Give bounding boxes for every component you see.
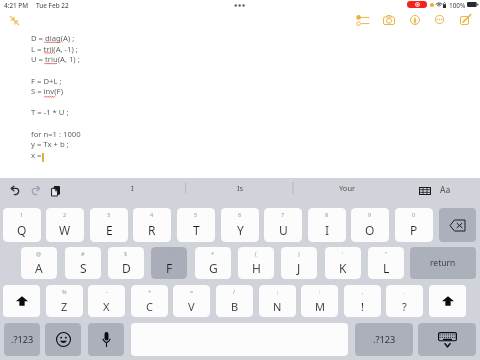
staticText: 7 [281, 211, 285, 219]
button[interactable]: Collapse [9, 15, 20, 26]
staticText: 9 [368, 211, 372, 219]
staticText: J [297, 260, 301, 276]
staticText: T = -1 * U ; [31, 107, 69, 117]
staticText: return [430, 257, 456, 269]
staticText: A [35, 260, 43, 276]
button[interactable]: , [344, 285, 381, 317]
button[interactable]: / [216, 285, 253, 317]
button[interactable]: Redo [32, 186, 40, 195]
button[interactable]: 5 [177, 208, 215, 242]
button[interactable]: 9 [351, 208, 389, 242]
button[interactable]: 6 [221, 208, 259, 242]
button[interactable]: % [46, 285, 83, 317]
button[interactable]: 1 [3, 208, 41, 242]
staticText: F [166, 260, 173, 276]
button[interactable]: : [301, 285, 338, 317]
staticText: " [385, 250, 388, 258]
button[interactable]: 2 [46, 208, 84, 242]
staticText: , [362, 288, 364, 296]
staticText: - [106, 288, 108, 296]
staticText: G [209, 260, 218, 276]
button[interactable]: Undo [11, 186, 19, 195]
staticText: ; [277, 288, 279, 296]
button[interactable]: 8 [308, 208, 346, 242]
staticText: ) [298, 250, 300, 258]
button[interactable]: Emoji [45, 323, 81, 356]
button[interactable]: Camera [383, 15, 395, 25]
staticText: 6 [238, 211, 242, 219]
button[interactable]: Recording [407, 1, 427, 8]
button[interactable]: Markup [410, 15, 420, 25]
button[interactable]: 4 [133, 208, 171, 242]
staticText: F = D+L ; [31, 76, 62, 86]
button[interactable]: . [386, 285, 423, 317]
button[interactable]: Shift [429, 285, 466, 317]
staticText: ! [361, 299, 364, 314]
button[interactable]: * [195, 247, 231, 279]
button[interactable]: Dictate [88, 323, 124, 356]
staticText: = [190, 288, 194, 296]
button[interactable]: ' [325, 247, 361, 279]
staticText: 4:21 PM [4, 1, 29, 10]
staticText: D [122, 260, 131, 276]
button[interactable]: .?123 [4, 323, 40, 356]
button[interactable]: 0 [395, 208, 433, 242]
button[interactable]: 7 [264, 208, 302, 242]
button[interactable]: ( [238, 247, 274, 279]
button[interactable]: = [173, 285, 210, 317]
staticText: L = tril(A, -1) ; [31, 44, 78, 54]
button[interactable]: 3 [90, 208, 128, 242]
staticText: U [279, 222, 288, 238]
staticText: % [62, 288, 67, 296]
staticText: @ [36, 250, 42, 258]
button[interactable]: $ [108, 247, 144, 279]
staticText: Z [61, 299, 68, 314]
button[interactable]: @ [21, 247, 57, 279]
staticText: $ [124, 250, 128, 258]
button[interactable]: Compose [460, 16, 469, 25]
staticText: I [131, 183, 134, 193]
staticText: * [211, 250, 215, 258]
staticText: y = Tx + b ; [31, 139, 69, 149]
staticText: Aa [440, 184, 451, 196]
staticText: / [233, 288, 236, 296]
staticText: 5 [194, 211, 198, 219]
button[interactable]: Hide keyboard [418, 323, 476, 356]
button[interactable]: " [368, 247, 404, 279]
staticText: ? [402, 299, 407, 314]
staticText: T [193, 222, 200, 238]
button[interactable]: # [65, 247, 101, 279]
button[interactable]: Aa [438, 184, 452, 196]
button[interactable]: ) [281, 247, 317, 279]
staticText: Y [237, 222, 244, 238]
staticText: S [80, 260, 87, 276]
button[interactable]: Format list [356, 15, 369, 26]
button[interactable]: & [151, 247, 187, 279]
button[interactable]: Paste [51, 186, 60, 196]
button[interactable]: return [410, 247, 476, 279]
button[interactable]: + [131, 285, 168, 317]
button[interactable]: I [78, 181, 186, 195]
button[interactable]: Insert table [419, 187, 431, 195]
button[interactable]: - [88, 285, 125, 317]
button[interactable]: Shift [3, 285, 40, 317]
staticText: N [273, 299, 282, 314]
button[interactable]: More [435, 15, 444, 24]
staticText: # [81, 250, 85, 258]
button[interactable]: Your [293, 181, 401, 195]
staticText: O [365, 222, 375, 238]
staticText: C [146, 299, 153, 314]
button[interactable]: Backspace [439, 208, 476, 242]
button[interactable]: Is [186, 181, 294, 195]
button[interactable]: ; [259, 285, 296, 317]
staticText: M [315, 299, 325, 314]
staticText: 4 [150, 211, 154, 219]
staticText: R [148, 222, 156, 238]
button[interactable]: .?123 [355, 323, 413, 356]
staticText: .?123 [11, 333, 34, 346]
staticText: ' [342, 250, 344, 258]
staticText: 2 [63, 211, 67, 219]
staticText: 3 [107, 211, 111, 219]
